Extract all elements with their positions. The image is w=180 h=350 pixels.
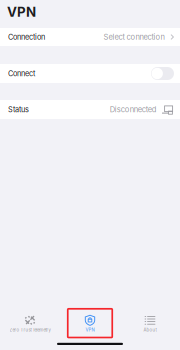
staticText: Connection	[8, 33, 45, 41]
staticText: Select connection	[103, 32, 164, 42]
button[interactable]: Connect	[0, 64, 180, 83]
staticText: Zero Trust Telemetry	[9, 327, 50, 333]
staticText: Disconnected	[110, 105, 157, 114]
staticText: VPN	[7, 4, 36, 20]
staticText: VPN	[85, 327, 94, 333]
button[interactable]: VPN	[68, 309, 112, 337]
button[interactable]: Connection	[0, 28, 180, 46]
button[interactable]: About	[128, 309, 172, 337]
staticText: Status	[8, 105, 29, 114]
staticText: Connect	[8, 69, 35, 78]
button[interactable]: Zero Trust Telemetry	[8, 309, 52, 337]
staticText: About	[143, 327, 156, 333]
